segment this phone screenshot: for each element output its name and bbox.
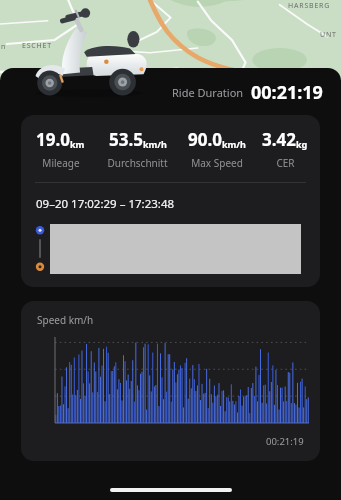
staticText: UNT: [320, 30, 337, 40]
staticText: ESCHET: [22, 41, 52, 51]
staticText: 53.5: [109, 128, 143, 151]
staticText: n: [1, 42, 6, 52]
staticText: Ride Duration: [172, 85, 244, 100]
staticText: km: [70, 138, 85, 150]
button[interactable]: 19.0: [21, 115, 320, 287]
staticText: Speed km/h: [37, 313, 94, 327]
staticText: Mileage: [42, 156, 80, 170]
staticText: HARSBERG: [288, 1, 331, 11]
staticText: 19.0: [36, 128, 70, 151]
staticText: 90.0: [188, 128, 222, 151]
staticText: km/h: [222, 138, 246, 150]
staticText: CER: [276, 156, 295, 170]
staticText: Durchschnitt: [107, 156, 168, 170]
staticText: 09–20 17:02:29 – 17:23:48: [36, 196, 175, 212]
staticText: 00:21:19: [266, 435, 304, 448]
button[interactable]: Speed chart: [21, 301, 320, 461]
staticText: km/h: [143, 138, 167, 150]
staticText: kg: [296, 138, 308, 150]
staticText: 3.42: [262, 128, 296, 151]
staticText: 00:21:19: [251, 80, 323, 105]
staticText: Max Speed: [191, 156, 243, 170]
